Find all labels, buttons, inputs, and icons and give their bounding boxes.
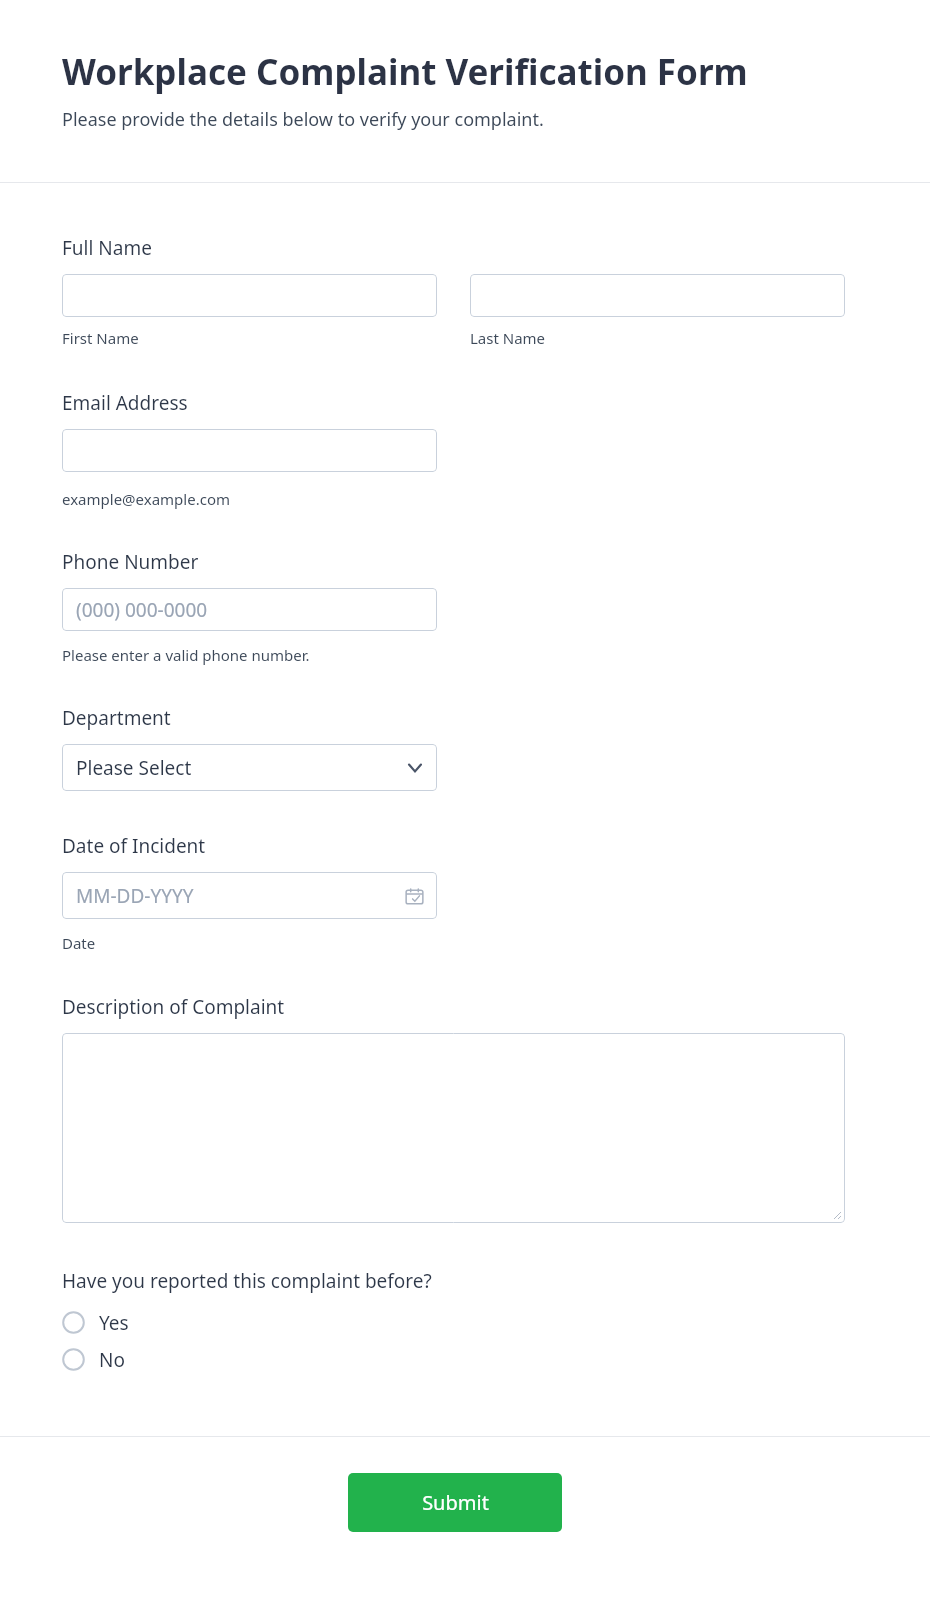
staticText: Please enter a valid phone number. [62,645,310,665]
button[interactable] [470,274,845,317]
staticText: MM-DD-YYYY [76,883,194,909]
staticText: Date [62,933,96,953]
button[interactable] [62,1033,845,1223]
button[interactable]: Yes [0,1304,930,1341]
button[interactable]: Please Select [62,744,437,791]
button[interactable]: Submit [348,1473,562,1532]
staticText: Workplace Complaint Verification Form [62,48,748,96]
button[interactable] [62,274,437,317]
staticText: (000) 000-0000 [76,597,208,623]
staticText: Email Address [62,390,188,416]
staticText: Full Name [62,235,152,261]
button[interactable] [62,429,437,472]
staticText: Submit [422,1489,489,1516]
staticText: Department [62,705,171,731]
button[interactable]: No [0,1341,930,1378]
staticText: Last Name [470,328,546,348]
staticText: example@example.com [62,489,230,509]
staticText: Please provide the details below to veri… [62,107,544,132]
button[interactable]: MM-DD-YYYY [62,872,437,919]
staticText: Have you reported this complaint before? [62,1268,432,1294]
staticText: No [99,1347,125,1373]
staticText: Yes [99,1310,129,1336]
other: Open department list [405,758,425,778]
staticText: First Name [62,328,139,348]
button[interactable]: (000) 000-0000 [62,588,437,631]
staticText: Date of Incident [62,833,206,859]
other: Pick date [405,886,424,905]
staticText: Please Select [76,755,192,781]
staticText: Phone Number [62,549,199,575]
staticText: Description of Complaint [62,994,285,1020]
